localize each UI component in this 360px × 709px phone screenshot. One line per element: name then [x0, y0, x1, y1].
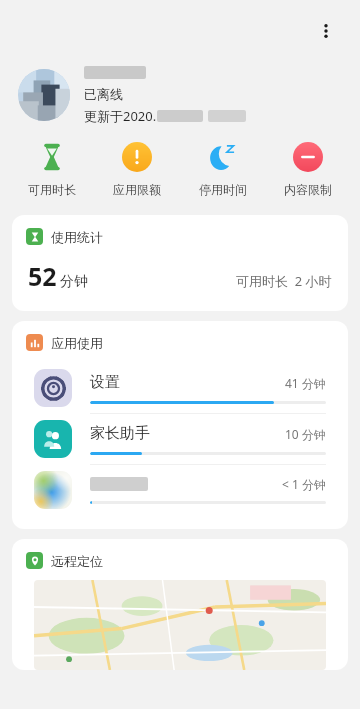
button[interactable]: 使用统计 [0, 215, 360, 311]
staticText: < 1 分钟 [282, 476, 326, 492]
button[interactable]: 远程定位 [0, 539, 360, 670]
button[interactable]: < 1 分钟 [12, 465, 348, 515]
button[interactable]: 内容限制 [266, 137, 350, 201]
staticText: 应用使用 [51, 335, 103, 351]
button[interactable]: More options [306, 11, 346, 51]
staticText: 远程定位 [51, 553, 103, 569]
staticText: 停用时间 [199, 182, 247, 197]
staticText: 家长助手 [90, 424, 150, 443]
staticText: 更新于2020. [84, 107, 157, 125]
button[interactable]: 家长助手 [12, 414, 348, 464]
staticText: 可用时长 [28, 182, 76, 197]
staticText: 使用统计 [51, 229, 103, 245]
staticText: 10 分钟 [285, 426, 326, 442]
staticText: 应用限额 [113, 182, 161, 197]
staticText: 设置 [90, 373, 120, 392]
staticText: 可用时长 2 小时 [236, 272, 332, 290]
staticText: 41 分钟 [285, 375, 326, 391]
staticText: 已离线 [84, 86, 123, 102]
button[interactable]: 应用限额 [95, 137, 179, 201]
staticText: 52 [28, 259, 57, 293]
button[interactable]: 停用时间 [181, 137, 265, 201]
button[interactable]: 已离线 [0, 62, 360, 127]
staticText: 内容限制 [284, 182, 332, 197]
staticText: 分钟 [60, 273, 88, 291]
button[interactable]: 设置 [12, 363, 348, 413]
button[interactable]: 可用时长 [10, 137, 94, 201]
